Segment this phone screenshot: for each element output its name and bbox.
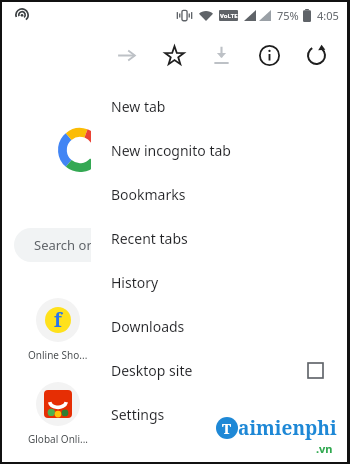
button[interactable]: Recent tabs	[91, 216, 347, 260]
button[interactable]: Search or type web address	[14, 228, 194, 262]
button[interactable]: Reload	[299, 38, 333, 72]
staticText: New incognito tab	[111, 141, 231, 160]
staticText: .vn	[316, 441, 333, 456]
staticText: 75%	[277, 8, 299, 23]
staticText: aimienphi	[238, 415, 337, 441]
staticText: 4:05	[317, 8, 339, 23]
button[interactable]: Page info	[252, 38, 286, 72]
staticText: T	[222, 419, 232, 438]
staticText: History	[111, 273, 159, 292]
staticText: Global Onli...	[28, 432, 89, 446]
staticText: Downloads	[111, 317, 185, 336]
staticText: Bookmarks	[111, 185, 186, 204]
button[interactable]: Bookmarks	[91, 172, 347, 216]
button[interactable]: Bookmark this page	[157, 38, 191, 72]
button[interactable]: Downloads	[91, 304, 347, 348]
button[interactable]: Settings	[91, 392, 347, 436]
staticText: Desktop site	[111, 361, 308, 380]
button[interactable]: Download page	[204, 38, 238, 72]
button[interactable]: Forward	[109, 38, 143, 72]
button[interactable]: f	[26, 298, 90, 362]
button[interactable]: History	[91, 260, 347, 304]
staticText: f	[54, 307, 62, 333]
staticText: Online Sho...	[28, 348, 88, 362]
staticText: Settings	[111, 405, 165, 424]
button[interactable]: New tab	[91, 84, 347, 128]
button[interactable]: New incognito tab	[91, 128, 347, 172]
staticText: New tab	[111, 97, 166, 116]
staticText: Search or type web address	[34, 236, 194, 254]
button[interactable]: Global Onli...	[26, 382, 90, 446]
staticText: VoLTE	[220, 12, 238, 20]
staticText: Recent tabs	[111, 229, 188, 248]
button[interactable]: Desktop site	[91, 348, 347, 392]
